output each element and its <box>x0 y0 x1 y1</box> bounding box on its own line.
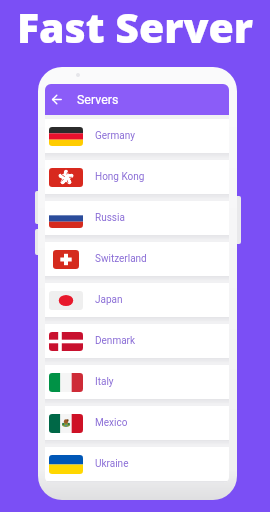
staticText: Hong Kong <box>95 171 145 183</box>
staticText: Switzerland <box>95 253 147 265</box>
button[interactable]: Mexico <box>45 406 229 440</box>
button[interactable]: Japan <box>45 283 229 317</box>
staticText: Servers <box>77 92 119 107</box>
staticText: Germany <box>95 130 135 142</box>
staticText: Fast Server <box>0 0 270 55</box>
staticText: Japan <box>95 294 123 306</box>
button[interactable]: Russia <box>45 201 229 235</box>
staticText: Russia <box>95 212 125 224</box>
button[interactable]: Denmark <box>45 324 229 358</box>
staticText: Italy <box>95 376 114 388</box>
button[interactable]: Hong Kong <box>45 160 229 194</box>
button[interactable]: Back <box>46 84 66 115</box>
staticText: Ukraine <box>95 458 129 470</box>
button[interactable]: Switzerland <box>45 242 229 276</box>
button[interactable]: Ukraine <box>45 447 229 481</box>
button[interactable]: Italy <box>45 365 229 399</box>
button[interactable]: Germany <box>45 119 229 153</box>
staticText: Denmark <box>95 335 136 347</box>
staticText: Mexico <box>95 417 128 429</box>
